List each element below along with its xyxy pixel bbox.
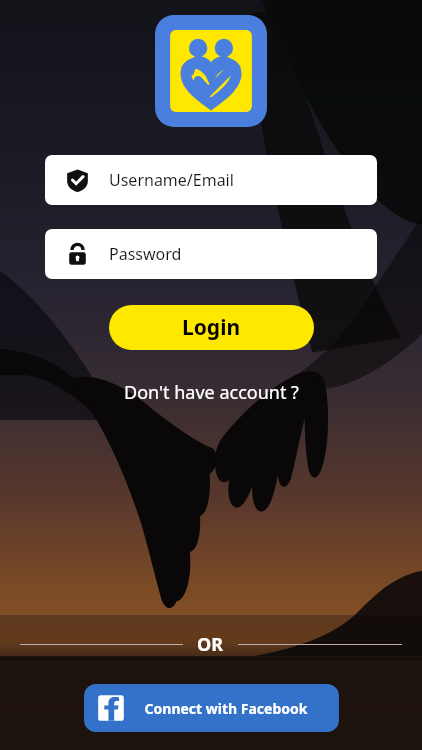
button[interactable]: Connect with Facebook bbox=[84, 684, 339, 732]
staticText: Don't have account ? bbox=[124, 380, 299, 405]
staticText: Password bbox=[109, 243, 182, 265]
button[interactable]: Username/Email bbox=[45, 155, 377, 205]
staticText: Username/Email bbox=[109, 169, 234, 191]
button[interactable]: Password bbox=[45, 229, 377, 279]
button[interactable]: Login bbox=[109, 305, 314, 350]
staticText: OR bbox=[197, 632, 224, 657]
staticText: Connect with Facebook bbox=[127, 699, 325, 718]
staticText: Login bbox=[182, 313, 241, 342]
button[interactable]: Don't have account ? bbox=[114, 376, 309, 409]
